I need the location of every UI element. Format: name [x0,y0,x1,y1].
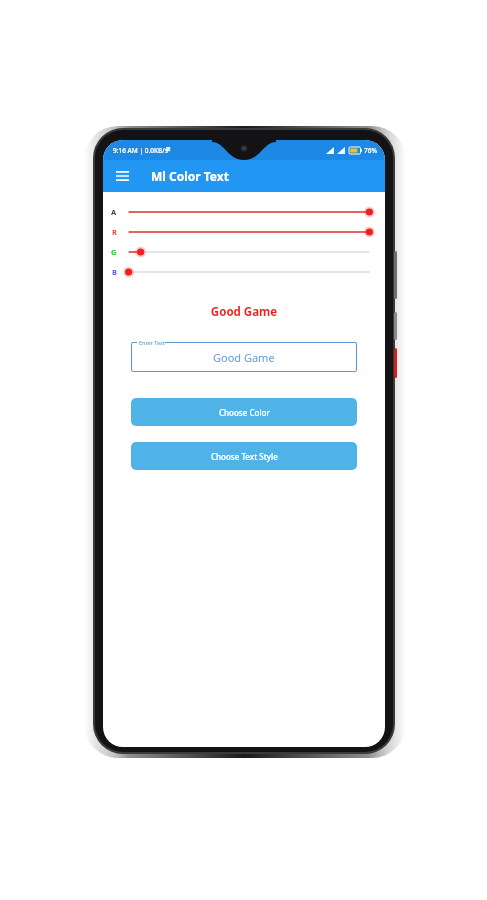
button[interactable]: Enter Text [131,342,357,372]
staticText: Ml Color Text [151,168,229,184]
staticText: G [111,247,117,257]
button[interactable]: A [103,202,385,222]
button[interactable]: G [103,242,385,262]
staticText: Good Game [213,350,275,365]
staticText: Choose Text Style [211,451,278,462]
staticText: Good Game [103,304,385,320]
staticText: 76% [364,146,377,155]
staticText: B [112,267,117,277]
button[interactable]: Choose Text Style [131,442,357,470]
staticText: R [112,227,117,237]
button[interactable]: B [103,262,385,282]
staticText: A [111,207,117,217]
button[interactable]: Choose Color [131,398,357,426]
staticText: 9:16 AM | 0.0KB/s [113,146,169,155]
button[interactable]: Open navigation menu [111,165,133,187]
staticText: Choose Color [219,407,270,418]
staticText: Enter Text [139,339,165,346]
button[interactable]: R [103,222,385,242]
